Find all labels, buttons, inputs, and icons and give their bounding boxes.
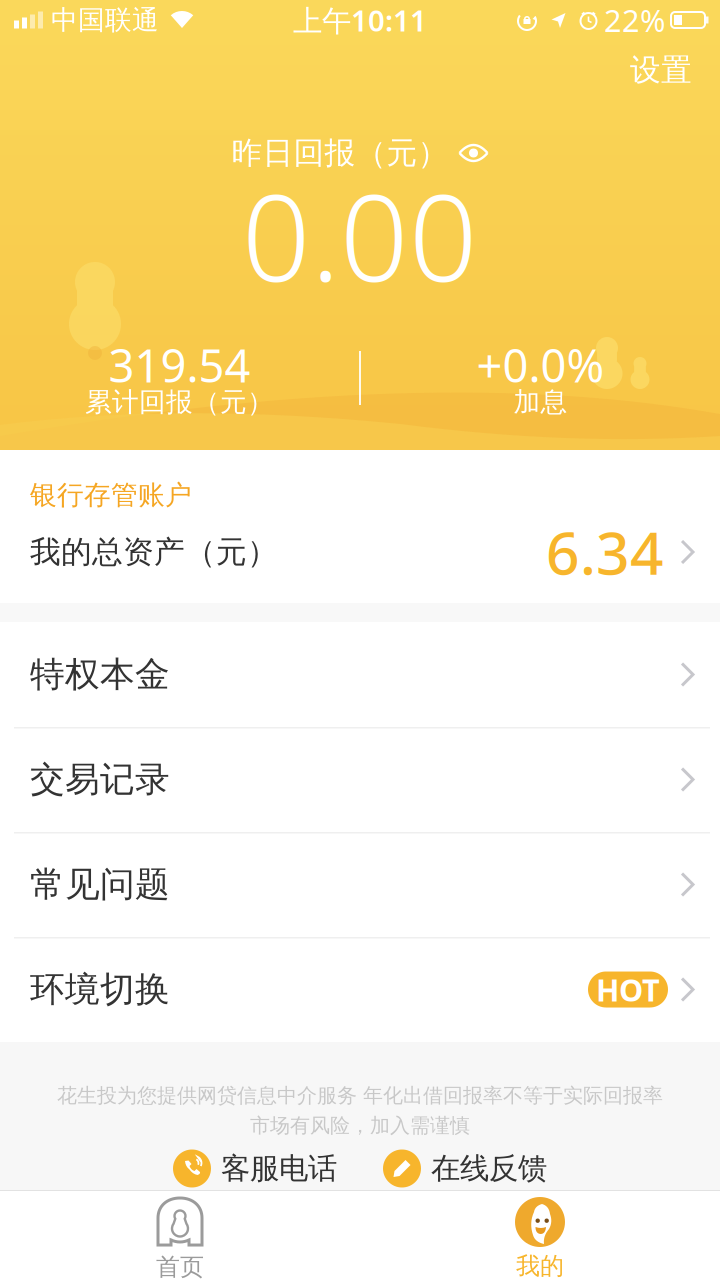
staticText: 在线反馈 — [431, 1150, 547, 1186]
staticText: HOT — [596, 969, 660, 1010]
staticText: 市场有风险，加入需谨慎 — [250, 1113, 470, 1138]
staticText: 常见问题 — [30, 863, 170, 906]
button[interactable]: 常见问题 — [0, 832, 720, 937]
staticText: 首页 — [156, 1252, 204, 1280]
staticText: 设置 — [630, 51, 692, 89]
button[interactable]: 首页 — [0, 1198, 360, 1280]
button[interactable]: 交易记录 — [0, 727, 720, 832]
staticText: 6.34 — [546, 513, 664, 591]
staticText: 花生投为您提供网贷信息中介服务 年化出借回报率不等于实际回报率 — [57, 1083, 663, 1108]
staticText: 客服电话 — [221, 1150, 337, 1186]
staticText: 累计回报（元） — [85, 386, 274, 418]
staticText: 319.54 — [108, 335, 250, 395]
staticText: 上午10:11 — [293, 0, 427, 39]
button[interactable]: 客服电话 — [173, 1149, 337, 1187]
staticText: 中国联通 — [51, 4, 159, 36]
staticText: 特权本金 — [30, 653, 170, 696]
button[interactable]: 昨日回报（元） — [231, 132, 488, 174]
button[interactable]: 我的 — [360, 1198, 720, 1280]
button[interactable]: 在线反馈 — [383, 1149, 547, 1187]
staticText: 交易记录 — [30, 758, 170, 801]
staticText: 22% — [604, 0, 665, 40]
staticText: 银行存管账户 — [30, 479, 192, 511]
button[interactable]: 特权本金 — [0, 622, 720, 727]
staticText: 我的 — [516, 1251, 564, 1280]
staticText: +0.0% — [476, 335, 604, 395]
staticText: 我的总资产（元） — [30, 533, 278, 571]
staticText: 昨日回报（元） — [231, 134, 448, 172]
staticText: 0.00 — [242, 155, 478, 315]
button[interactable]: 设置 — [630, 40, 692, 100]
button[interactable]: 我的总资产（元） — [0, 524, 720, 580]
staticText: 环境切换 — [30, 968, 170, 1011]
button[interactable]: 环境切换 — [0, 937, 720, 1042]
staticText: 加息 — [513, 386, 567, 418]
